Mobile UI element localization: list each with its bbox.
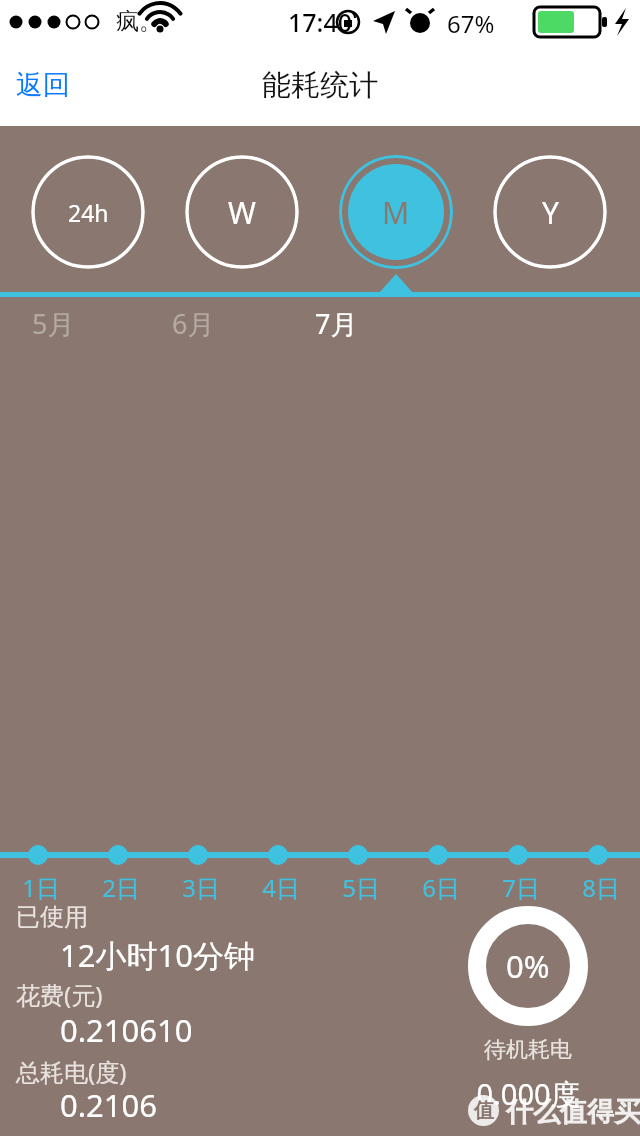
staticText: M: [382, 192, 410, 233]
button[interactable]: Standby consumption 0 percent: [468, 906, 588, 1026]
staticText: 已使用: [16, 902, 88, 932]
staticText: 8日: [573, 871, 629, 904]
staticText: 12小时10分钟: [60, 934, 255, 976]
staticText: 4日: [253, 871, 309, 904]
staticText: 2日: [93, 871, 149, 904]
staticText: 花费(元): [16, 978, 103, 1011]
staticText: 67%: [447, 7, 495, 40]
button[interactable]: 24h: [31, 155, 145, 269]
staticText: 6月: [172, 305, 215, 342]
staticText: 5月: [32, 305, 75, 342]
button[interactable]: 5月: [22, 300, 142, 346]
staticText: 17:40: [288, 5, 353, 39]
staticText: 7日: [493, 871, 549, 904]
button[interactable]: Y: [493, 155, 607, 269]
staticText: 疯。: [116, 7, 162, 36]
button[interactable]: 6月: [162, 300, 282, 346]
staticText: 5日: [333, 871, 389, 904]
staticText: 0.210610: [60, 1009, 193, 1051]
staticText: 待机耗电: [468, 1036, 588, 1064]
staticText: 24h: [68, 197, 109, 228]
button[interactable]: M: [339, 155, 453, 269]
button[interactable]: 返回: [8, 60, 78, 110]
staticText: 返回: [16, 68, 70, 102]
staticText: 1日: [13, 871, 69, 904]
staticText: Y: [542, 192, 559, 233]
staticText: 0.2106: [60, 1084, 157, 1126]
staticText: 总耗电(度): [16, 1055, 127, 1088]
staticText: W: [228, 192, 256, 233]
staticText: 能耗统计: [262, 67, 378, 104]
staticText: 6日: [413, 871, 469, 904]
staticText: 0.000度: [466, 1074, 590, 1114]
staticText: 3日: [173, 871, 229, 904]
staticText: 7月: [315, 305, 358, 342]
button[interactable]: 7月: [305, 300, 425, 346]
button[interactable]: W: [185, 155, 299, 269]
staticText: 什么值得买: [499, 1092, 640, 1129]
staticText: 0%: [506, 945, 550, 987]
staticText: 值: [474, 1098, 494, 1123]
